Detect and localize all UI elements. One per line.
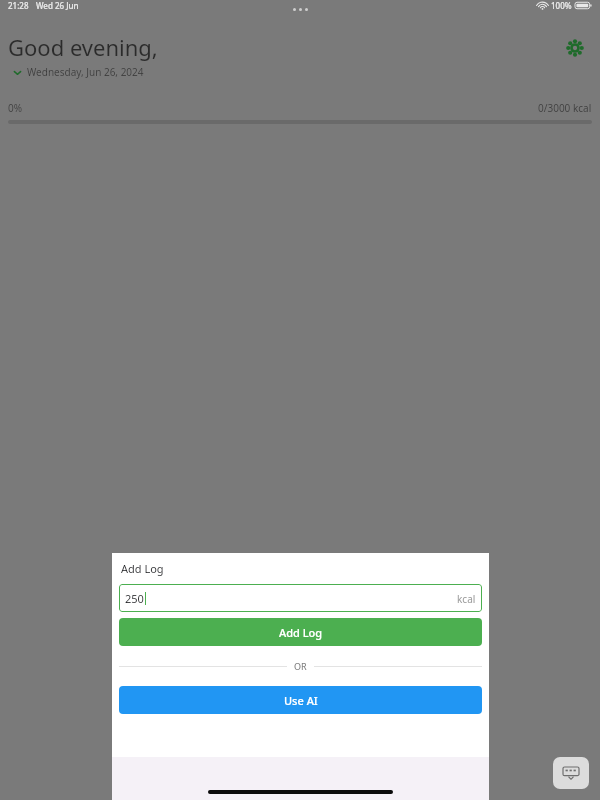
button[interactable]: Dismiss keyboard [553, 757, 589, 789]
staticText: OR [294, 660, 307, 672]
staticText: Wednesday, Jun 26, 2024 [27, 65, 144, 79]
staticText: Add Log [121, 561, 164, 576]
staticText: Use AI [284, 693, 318, 708]
staticText: 250 [125, 591, 144, 606]
button[interactable]: Wednesday, Jun 26, 2024 [12, 65, 144, 79]
staticText: Good evening, [8, 32, 158, 62]
button[interactable]: 250 [119, 584, 482, 612]
staticText: 100% [551, 0, 572, 11]
button[interactable]: Settings [564, 37, 586, 59]
button[interactable]: Add Log [119, 618, 482, 646]
staticText: kcal [457, 592, 476, 606]
staticText: 0/3000 kcal [538, 101, 592, 115]
staticText: 21:28 [8, 0, 29, 11]
staticText: Add Log [279, 625, 323, 640]
staticText: 0% [8, 101, 23, 115]
button[interactable]: Use AI [119, 686, 482, 714]
staticText: Wed 26 Jun [36, 0, 79, 11]
